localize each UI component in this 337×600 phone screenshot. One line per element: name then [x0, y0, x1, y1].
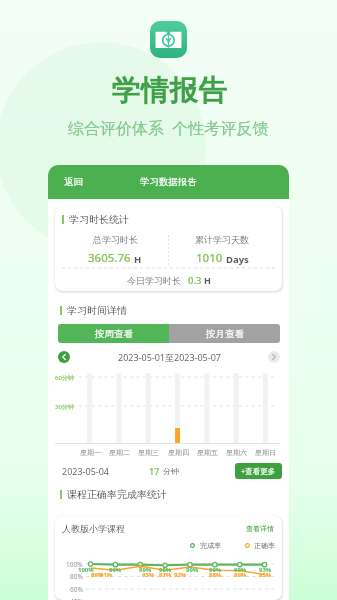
staticText: 星期一 — [80, 448, 101, 457]
staticText: 1010 — [196, 250, 223, 266]
staticText: 星期日 — [255, 448, 276, 457]
staticText: 学情报告 — [111, 73, 227, 108]
staticText: 89% — [91, 571, 104, 579]
staticText: 分钟 — [163, 466, 179, 476]
staticText: 按周查看 — [95, 328, 133, 340]
staticText: 星期三 — [138, 448, 159, 457]
staticText: 星期四 — [168, 448, 189, 457]
staticText: Days — [226, 253, 249, 266]
staticText: 总学习时长 — [93, 234, 138, 245]
button[interactable]: Next week — [268, 351, 280, 363]
staticText: 学习时长统计 — [69, 213, 129, 225]
button[interactable]: 查看详情 — [245, 523, 275, 534]
staticText: 30分钟 — [55, 403, 74, 411]
staticText: 99% — [234, 566, 247, 574]
staticText: 17 — [149, 465, 160, 477]
staticText: 92% — [174, 571, 187, 579]
staticText: 88% — [209, 571, 222, 579]
button[interactable]: 按周查看 — [58, 324, 169, 343]
staticText: 87% — [159, 571, 172, 579]
staticText: 人教版小学课程 — [62, 523, 125, 534]
staticText: 85% — [259, 571, 272, 579]
staticText: 95% — [142, 571, 155, 579]
staticText: 99% — [186, 566, 199, 574]
staticText: 93% — [259, 566, 272, 574]
button[interactable]: +查看更多 — [235, 463, 282, 479]
button[interactable]: Previous week — [58, 351, 70, 363]
staticText: 89% — [234, 571, 247, 579]
staticText: 返回 — [64, 176, 83, 188]
staticText: 正确率 — [254, 541, 275, 550]
other: App icon — [150, 21, 187, 58]
staticText: H — [134, 253, 142, 266]
staticText: 累计学习天数 — [195, 234, 249, 245]
staticText: 今日学习时长 — [127, 275, 181, 286]
staticText: 2023-05-01至2023-05-07 — [118, 351, 221, 363]
staticText: 100% — [66, 560, 83, 569]
button[interactable]: 返回 — [64, 176, 83, 188]
staticText: 学习时间详情 — [67, 304, 127, 316]
staticText: H — [204, 274, 211, 286]
staticText: 2023-05-04 — [62, 465, 109, 477]
staticText: 100% — [78, 566, 94, 574]
staticText: 0.3 — [188, 274, 202, 287]
staticText: 3605.76 — [88, 250, 131, 266]
staticText: 星期二 — [109, 448, 130, 457]
staticText: 60分钟 — [55, 374, 74, 382]
staticText: 按月查看 — [206, 328, 244, 340]
staticText: 完成率 — [200, 541, 221, 550]
staticText: 91% — [100, 571, 113, 579]
staticText: 课程正确率完成率统计 — [67, 488, 167, 500]
staticText: 80% — [70, 572, 83, 581]
staticText: 99% — [109, 566, 122, 574]
staticText: 60% — [70, 585, 83, 594]
button[interactable]: 按月查看 — [169, 324, 280, 343]
staticText: 99% — [139, 566, 152, 574]
staticText: +查看更多 — [241, 466, 276, 476]
staticText: 查看详情 — [246, 524, 274, 533]
staticText: 星期五 — [197, 448, 218, 457]
staticText: 星期六 — [226, 448, 247, 457]
staticText: 学习数据报告 — [140, 176, 197, 188]
staticText: 综合评价体系 个性考评反馈 — [68, 117, 269, 139]
staticText: 99% — [209, 566, 222, 574]
staticText: 40% — [70, 597, 83, 600]
staticText: 98% — [159, 566, 172, 574]
